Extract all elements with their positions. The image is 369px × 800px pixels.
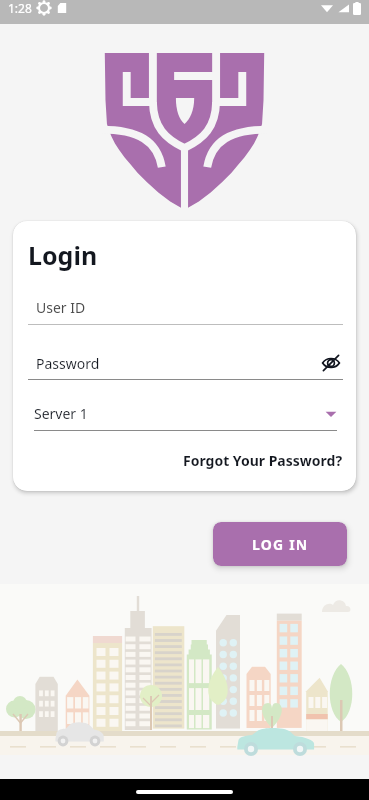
- staticText: Login: [28, 238, 98, 272]
- staticText: Forgot Your Password?: [183, 451, 343, 470]
- button[interactable]: Forgot Your Password?: [183, 451, 343, 470]
- staticText: LOG IN: [252, 535, 309, 554]
- button[interactable]: User ID: [28, 298, 343, 325]
- staticText: Server 1: [34, 404, 88, 423]
- button[interactable]: Server 1: [34, 404, 337, 431]
- button[interactable]: Password: [28, 351, 343, 380]
- staticText: Password: [36, 354, 100, 373]
- button[interactable]: LOG IN: [213, 522, 347, 566]
- staticText: User ID: [36, 298, 86, 317]
- staticText: 1:28: [8, 0, 32, 16]
- button[interactable]: Show password: [319, 351, 343, 375]
